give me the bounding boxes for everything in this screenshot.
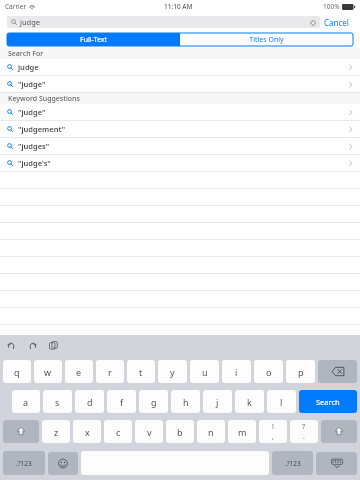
staticText: j <box>216 396 219 408</box>
button[interactable]: ! <box>259 420 287 443</box>
staticText: o <box>266 366 272 378</box>
button[interactable]: w <box>34 360 62 383</box>
staticText: Carrier <box>5 2 27 11</box>
button[interactable]: g <box>139 390 168 413</box>
staticText: Cancel <box>324 17 349 28</box>
button[interactable]: i <box>222 360 251 383</box>
staticText: "judgement" <box>18 124 66 134</box>
staticText: ? <box>302 422 306 432</box>
staticText: "judge" <box>18 79 46 89</box>
button[interactable]: "judgement" <box>0 121 360 137</box>
staticText: n <box>208 426 214 438</box>
staticText: 100% <box>323 2 340 11</box>
button[interactable]: "judges" <box>0 138 360 154</box>
button[interactable]: Hide keyboard <box>316 452 357 475</box>
staticText: y <box>170 366 175 378</box>
staticText: Titles Only <box>249 35 284 45</box>
button[interactable]: y <box>158 360 187 383</box>
button[interactable]: Clear text <box>309 19 316 26</box>
staticText: Search For <box>8 49 44 59</box>
button[interactable]: a <box>12 390 40 413</box>
staticText: t <box>139 366 143 378</box>
staticText: k <box>247 396 252 408</box>
staticText: Keyword Suggestions <box>8 94 80 104</box>
staticText: e <box>76 366 82 378</box>
staticText: l <box>280 396 283 408</box>
staticText: q <box>14 366 20 378</box>
button[interactable]: .?123 <box>3 451 45 475</box>
button[interactable]: Shift <box>321 420 357 443</box>
button[interactable]: r <box>96 360 124 383</box>
button[interactable]: Full-Text <box>7 33 180 46</box>
staticText: 11:10 AM <box>164 2 193 11</box>
staticText: "judge" <box>18 107 46 117</box>
staticText: c <box>116 426 121 438</box>
staticText: Full-Text <box>80 35 107 45</box>
button[interactable]: Backspace <box>318 360 357 383</box>
staticText: v <box>147 426 152 438</box>
staticText: d <box>87 396 93 408</box>
button[interactable]: Paste <box>47 339 60 352</box>
staticText: i <box>235 366 238 378</box>
button[interactable]: p <box>286 360 315 383</box>
staticText: b <box>177 426 183 438</box>
button[interactable]: h <box>171 390 200 413</box>
staticText: w <box>44 366 52 378</box>
staticText: s <box>55 396 60 408</box>
button[interactable]: "judge's" <box>0 155 360 171</box>
staticText: p <box>298 366 304 378</box>
staticText: , <box>272 432 274 442</box>
button[interactable]: f <box>107 390 136 413</box>
staticText: a <box>23 396 29 408</box>
staticText: judge <box>18 62 39 72</box>
staticText: ! <box>272 422 274 432</box>
button[interactable]: n <box>197 420 225 443</box>
staticText: judge <box>20 17 41 27</box>
button[interactable]: b <box>166 420 194 443</box>
staticText: z <box>54 426 59 438</box>
button[interactable]: k <box>235 390 264 413</box>
staticText: h <box>183 396 189 408</box>
button[interactable]: v <box>135 420 163 443</box>
staticText: .?123 <box>285 459 301 468</box>
staticText: "judges" <box>18 141 50 151</box>
button[interactable]: u <box>190 360 219 383</box>
staticText: . <box>303 432 305 442</box>
staticText: m <box>238 426 247 438</box>
button[interactable]: Redo <box>26 339 39 352</box>
button[interactable]: e <box>65 360 93 383</box>
button[interactable]: "judge" <box>0 76 360 92</box>
button[interactable]: o <box>254 360 283 383</box>
staticText: .?123 <box>16 459 32 468</box>
button[interactable]: judge <box>0 59 360 75</box>
button[interactable]: judge <box>7 16 320 28</box>
staticText: Search <box>316 397 340 407</box>
staticText: x <box>85 426 90 438</box>
button[interactable]: q <box>3 360 31 383</box>
staticText: f <box>120 396 124 408</box>
button[interactable]: d <box>75 390 104 413</box>
button[interactable]: s <box>43 390 72 413</box>
button[interactable]: "judge" <box>0 104 360 120</box>
button[interactable]: Shift <box>3 420 39 443</box>
button[interactable]: j <box>203 390 232 413</box>
button[interactable]: ? <box>290 420 318 443</box>
button[interactable]: c <box>104 420 132 443</box>
staticText: u <box>202 366 208 378</box>
button[interactable]: m <box>228 420 256 443</box>
button[interactable]: z <box>42 420 70 443</box>
button[interactable]: x <box>73 420 101 443</box>
button[interactable]: Emoji <box>48 452 78 475</box>
button[interactable]: l <box>267 390 296 413</box>
button[interactable]: Cancel <box>320 15 353 30</box>
button[interactable]: Search <box>299 390 357 413</box>
button[interactable]: Undo <box>5 339 18 352</box>
button[interactable]: t <box>127 360 155 383</box>
button[interactable]: Titles Only <box>180 33 353 46</box>
staticText: g <box>151 396 157 408</box>
button[interactable]: .?123 <box>272 451 313 475</box>
staticText: r <box>108 366 112 378</box>
staticText: "judge's" <box>18 158 51 168</box>
